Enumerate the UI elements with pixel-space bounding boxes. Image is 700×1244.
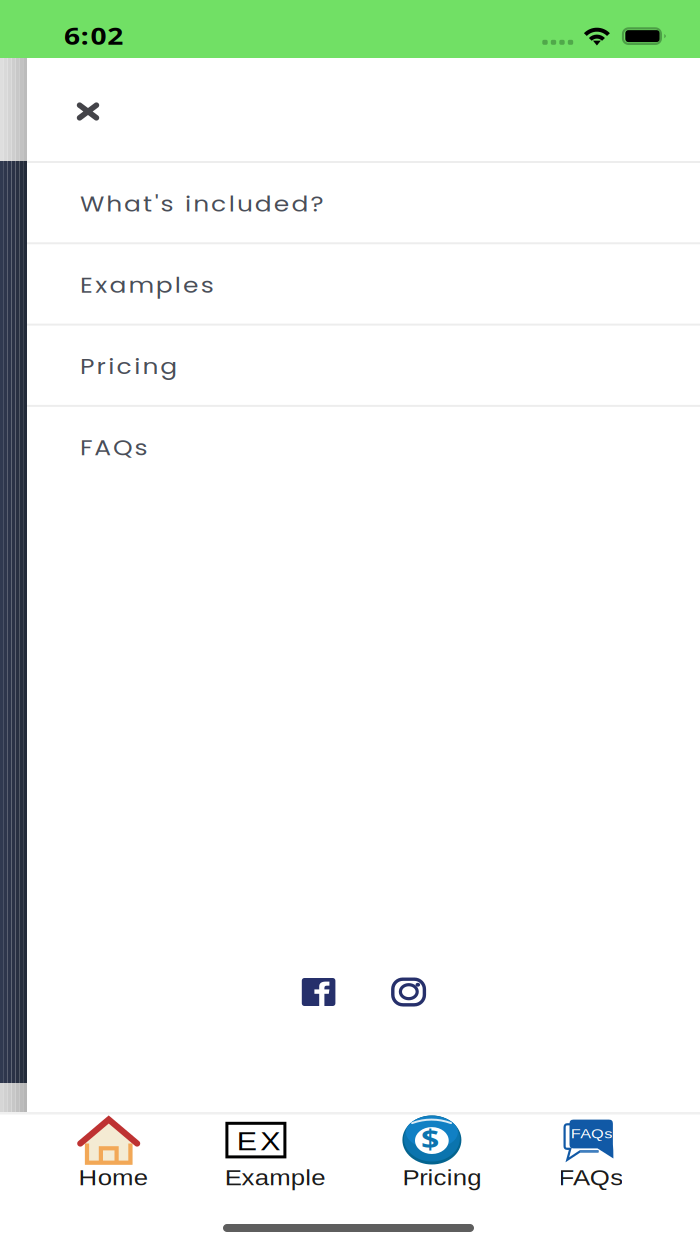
button[interactable]: EX: [200, 1115, 350, 1203]
button[interactable]: FAQs: [27, 405, 700, 486]
button[interactable]: What's included?: [27, 161, 700, 242]
staticText: Home: [84, 1166, 142, 1190]
button[interactable]: Home: [38, 1115, 188, 1203]
staticText: EX: [237, 1127, 273, 1156]
button[interactable]: FAQs: [516, 1115, 666, 1203]
button[interactable]: $: [367, 1115, 517, 1203]
staticText: $: [421, 1121, 436, 1157]
button[interactable]: Instagram: [391, 977, 426, 1006]
staticText: FAQs: [80, 433, 136, 463]
button[interactable]: Pricing: [27, 324, 700, 405]
staticText: Examples: [80, 271, 192, 300]
staticText: Pricing: [409, 1166, 475, 1190]
button[interactable]: Facebook: [302, 978, 335, 1006]
button[interactable]: Examples: [27, 242, 700, 324]
staticText: FAQs: [564, 1166, 618, 1190]
button[interactable]: Close menu: [58, 82, 118, 142]
staticText: Pricing: [80, 352, 161, 381]
staticText: What's included?: [80, 190, 283, 219]
staticText: 6:02: [64, 20, 113, 52]
staticText: FAQs: [571, 1126, 606, 1141]
staticText: Example: [233, 1166, 317, 1190]
